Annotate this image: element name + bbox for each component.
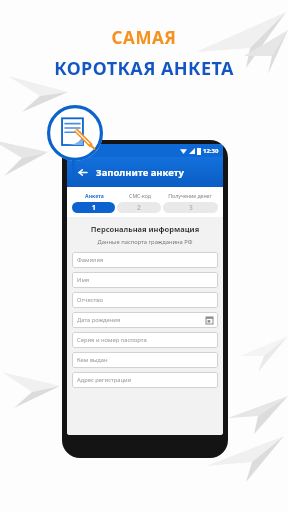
button[interactable]: Отчество bbox=[72, 292, 218, 308]
staticText: Анкета bbox=[85, 192, 104, 199]
button[interactable]: Дата рождения bbox=[72, 312, 218, 328]
button[interactable]: Серия и номер паспорта bbox=[72, 332, 218, 348]
staticText: Дата рождения bbox=[77, 316, 206, 324]
other: Анкета bbox=[46, 104, 104, 162]
staticText: 3 bbox=[189, 203, 193, 212]
button[interactable]: Фамилия bbox=[72, 252, 218, 268]
staticText: Имя bbox=[77, 276, 213, 284]
staticText: Кем выдан bbox=[77, 356, 213, 364]
button[interactable]: СМС-код bbox=[117, 192, 162, 199]
staticText: Данные паспорта гражданина РФ bbox=[72, 238, 218, 246]
button[interactable]: Получение денег bbox=[162, 192, 218, 199]
staticText: СМС-код bbox=[129, 192, 151, 199]
button[interactable]: 3 bbox=[163, 202, 218, 213]
staticText: Фамилия bbox=[77, 256, 213, 264]
button[interactable]: Имя bbox=[72, 272, 218, 288]
staticText: Адрес регистрации bbox=[77, 376, 213, 384]
staticText: Отчество bbox=[77, 296, 213, 304]
button[interactable]: 2 bbox=[117, 202, 161, 213]
staticText: Персональная информация bbox=[72, 224, 218, 234]
staticText: Получение денег bbox=[168, 192, 212, 199]
staticText: КОРОТКАЯ АНКЕТА bbox=[54, 56, 234, 81]
staticText: Серия и номер паспорта bbox=[77, 336, 213, 344]
button[interactable]: Кем выдан bbox=[72, 352, 218, 368]
button[interactable]: 1 bbox=[72, 202, 115, 213]
staticText: 2 bbox=[137, 203, 141, 212]
button[interactable]: Адрес регистрации bbox=[72, 372, 218, 388]
staticText: Заполните анкету bbox=[96, 166, 184, 179]
button[interactable]: Анкета bbox=[72, 192, 117, 199]
button[interactable]: Назад bbox=[74, 164, 90, 180]
staticText: САМАЯ bbox=[111, 26, 177, 49]
staticText: 1 bbox=[92, 203, 96, 212]
staticText: 12:30 bbox=[203, 147, 219, 155]
